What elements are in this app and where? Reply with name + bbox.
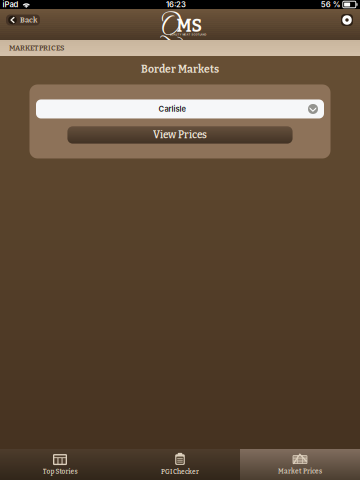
staticText: 16:23 — [166, 0, 186, 9]
button[interactable]: Back — [6, 14, 40, 25]
staticText: Q — [159, 9, 180, 45]
staticText: MS — [176, 16, 201, 36]
staticText: Market Prices — [278, 467, 322, 475]
staticText: Back — [20, 15, 37, 24]
button[interactable]: View Prices — [67, 126, 292, 143]
button[interactable]: Top Stories — [0, 449, 120, 480]
staticText: MARKET PRICES — [9, 44, 64, 52]
button[interactable]: PGI Checker — [120, 449, 240, 480]
staticText: Border Markets — [141, 63, 219, 75]
button[interactable]: Carlisle — [36, 99, 324, 118]
staticText: iPad — [2, 0, 18, 9]
staticText: View Prices — [153, 129, 207, 141]
staticText: 56 % — [321, 0, 341, 9]
staticText: Top Stories — [42, 468, 77, 475]
staticText: PGI Checker — [161, 468, 199, 476]
staticText: Carlisle — [158, 104, 185, 114]
button[interactable]: Market Prices — [240, 449, 360, 480]
staticText: QUALITY MEAT SCOTLAND — [169, 33, 206, 36]
button[interactable]: Settings — [340, 13, 354, 27]
